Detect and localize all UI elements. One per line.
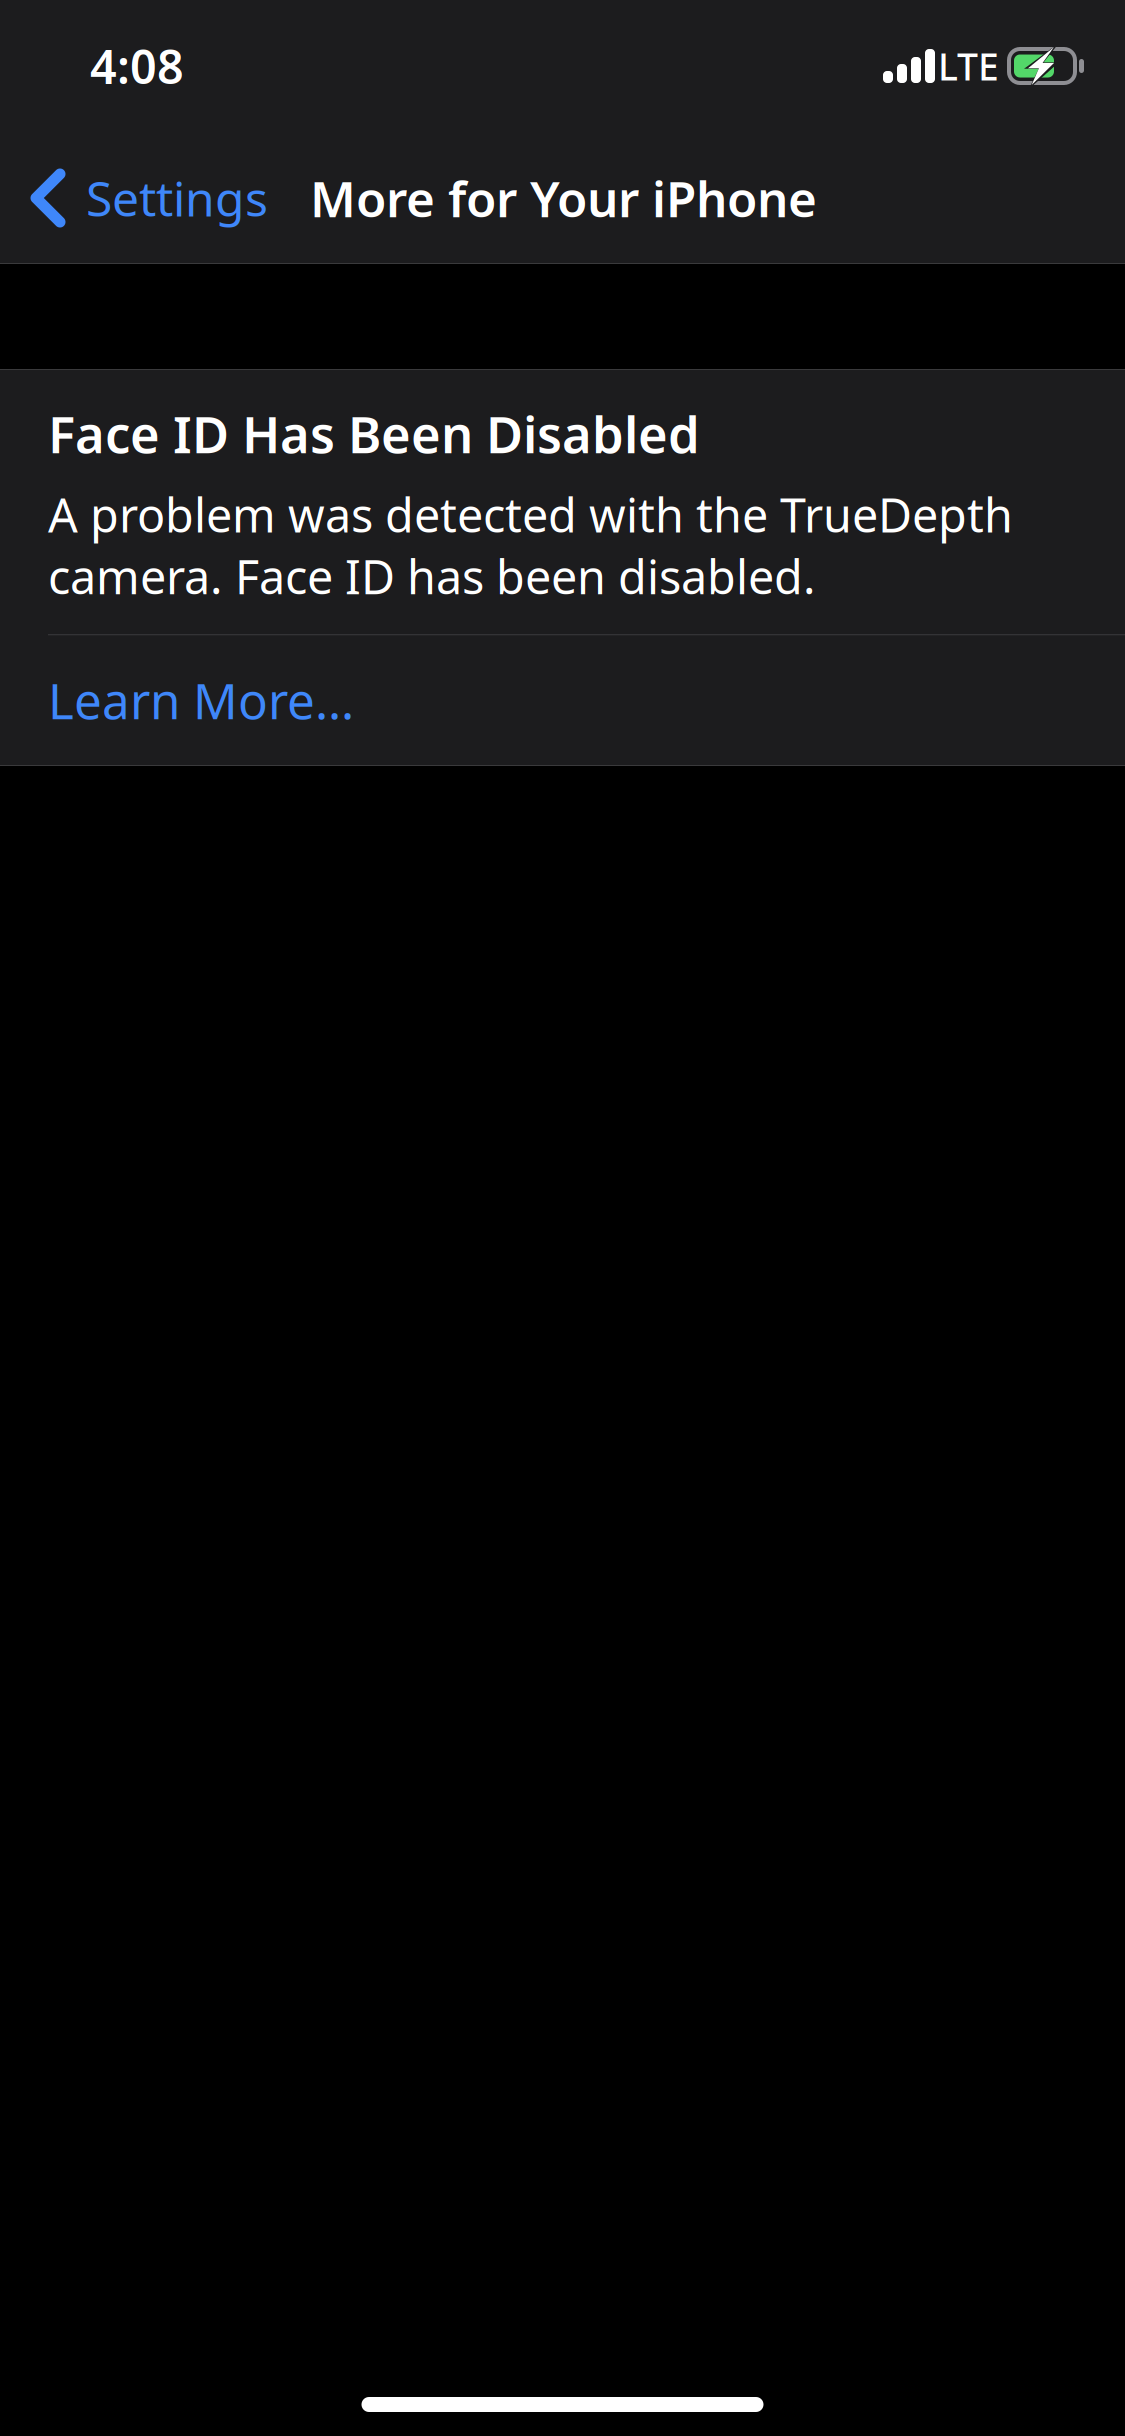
staticText: Settings: [86, 166, 268, 230]
staticText: 4:08: [90, 35, 184, 97]
staticText: A problem was detected with the TrueDept…: [48, 483, 1013, 607]
staticText: Learn More...: [48, 667, 354, 733]
button[interactable]: Back to Settings: [0, 132, 284, 264]
staticText: LTE: [938, 41, 999, 91]
staticText: More for Your iPhone: [310, 165, 817, 231]
staticText: Face ID Has Been Disabled: [48, 400, 700, 467]
button[interactable]: Learn More...: [0, 635, 1125, 766]
